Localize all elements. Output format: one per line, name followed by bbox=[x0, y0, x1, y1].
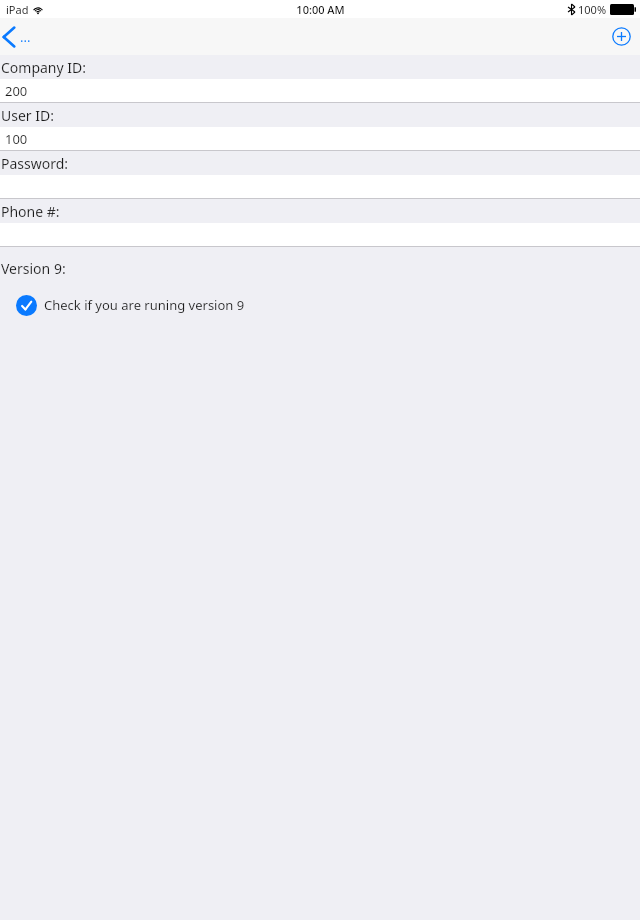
button[interactable]: 200 bbox=[0, 79, 640, 102]
staticText: 10:00 AM bbox=[296, 2, 345, 17]
button[interactable]: Check if you are runing version 9 bbox=[16, 292, 245, 318]
staticText: Phone #: bbox=[1, 202, 60, 221]
staticText: ... bbox=[20, 28, 31, 46]
button[interactable]: ... bbox=[0, 18, 39, 55]
staticText: 100% bbox=[578, 2, 607, 17]
staticText: 200 bbox=[5, 82, 28, 100]
staticText: iPad bbox=[6, 2, 29, 17]
staticText: 100 bbox=[5, 130, 28, 148]
button[interactable]: Add bbox=[603, 18, 640, 55]
staticText: Password: bbox=[1, 154, 69, 173]
staticText: Company ID: bbox=[1, 58, 87, 77]
button[interactable]: 100 bbox=[0, 127, 640, 150]
staticText: User ID: bbox=[1, 106, 54, 125]
staticText: Version 9: bbox=[1, 259, 66, 278]
staticText: Check if you are runing version 9 bbox=[44, 296, 245, 314]
